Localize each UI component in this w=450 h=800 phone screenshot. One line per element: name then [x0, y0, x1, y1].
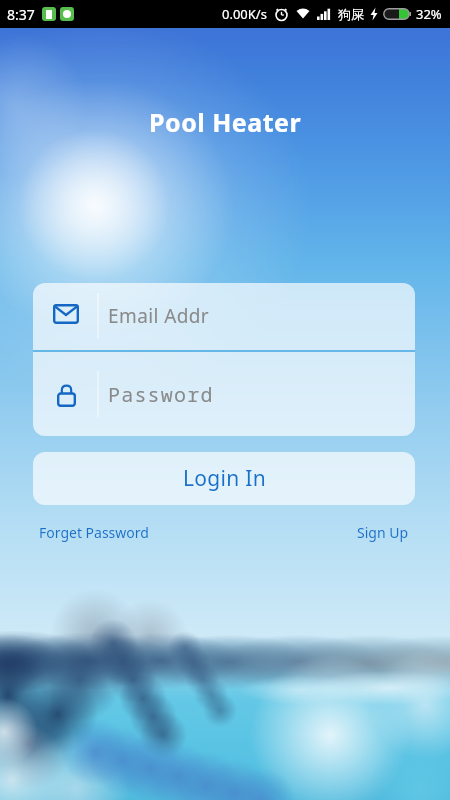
staticText: 狗屎	[338, 6, 364, 22]
staticText: 0.00K/s	[222, 5, 267, 23]
button[interactable]: Password	[33, 352, 415, 436]
button[interactable]: Forget Password	[39, 523, 149, 542]
staticText: Pool Heater	[149, 105, 302, 139]
staticText: Sign Up	[357, 523, 409, 542]
staticText: Forget Password	[39, 523, 149, 542]
button[interactable]: Sign Up	[357, 523, 409, 542]
staticText: Login In	[183, 464, 266, 493]
staticText: Password	[108, 381, 214, 408]
staticText: 8:37	[7, 5, 35, 24]
button[interactable]: Login In	[33, 452, 415, 505]
button[interactable]: Email Addr	[33, 283, 415, 350]
staticText: 32%	[416, 5, 442, 23]
staticText: Email Addr	[108, 303, 210, 329]
